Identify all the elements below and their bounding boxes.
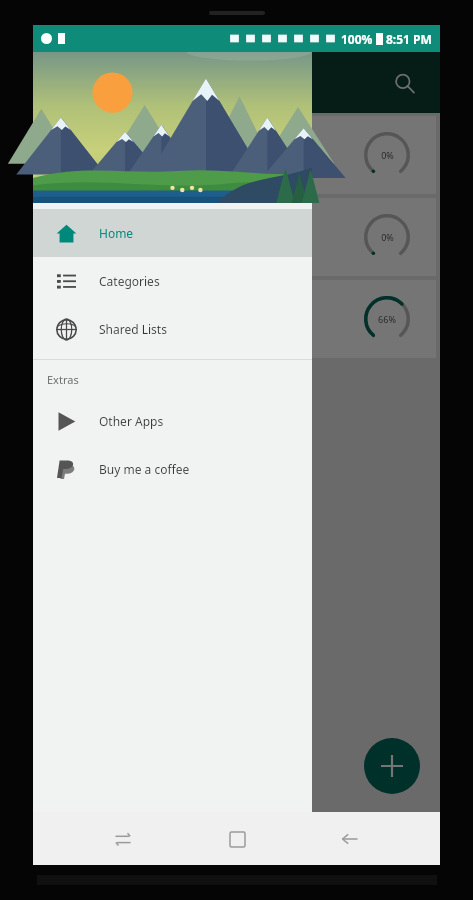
button[interactable]: Categories [33,257,312,305]
staticText: 8:51 PM [386,31,432,47]
staticText: 8:51 PM [386,31,432,47]
button[interactable]: 66% [37,280,436,358]
button[interactable]: Back [327,816,373,862]
staticText: Shared Lists [99,321,167,337]
staticText: 0% [381,149,394,161]
button[interactable]: 0% [37,198,436,276]
button[interactable]: Home [33,209,312,257]
button[interactable]: Buy me a coffee [33,445,312,493]
button[interactable]: Shared Lists [33,305,312,353]
staticText: Home [99,225,134,241]
button[interactable]: Recents [100,816,146,862]
staticText: 0% [381,231,394,243]
staticText: 100% [341,31,373,47]
staticText: Other Apps [99,413,164,429]
staticText: Buy me a coffee [99,461,190,477]
button[interactable]: 0% [37,116,436,194]
staticText: Categories [99,273,160,289]
staticText: 66% [378,313,396,325]
staticText: Extras [47,372,79,387]
button[interactable]: Add [364,738,420,794]
button[interactable]: Search [382,61,426,105]
button[interactable]: Other Apps [33,397,312,445]
staticText: 100% [341,31,373,47]
button[interactable]: Home [214,816,260,862]
